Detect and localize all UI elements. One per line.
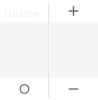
button[interactable]: Untitled [0,0,49,22]
staticText: Untitled [4,7,45,20]
button[interactable]: Remove [49,78,98,100]
button[interactable]: Add [49,0,98,22]
button[interactable]: Shape [0,78,49,100]
